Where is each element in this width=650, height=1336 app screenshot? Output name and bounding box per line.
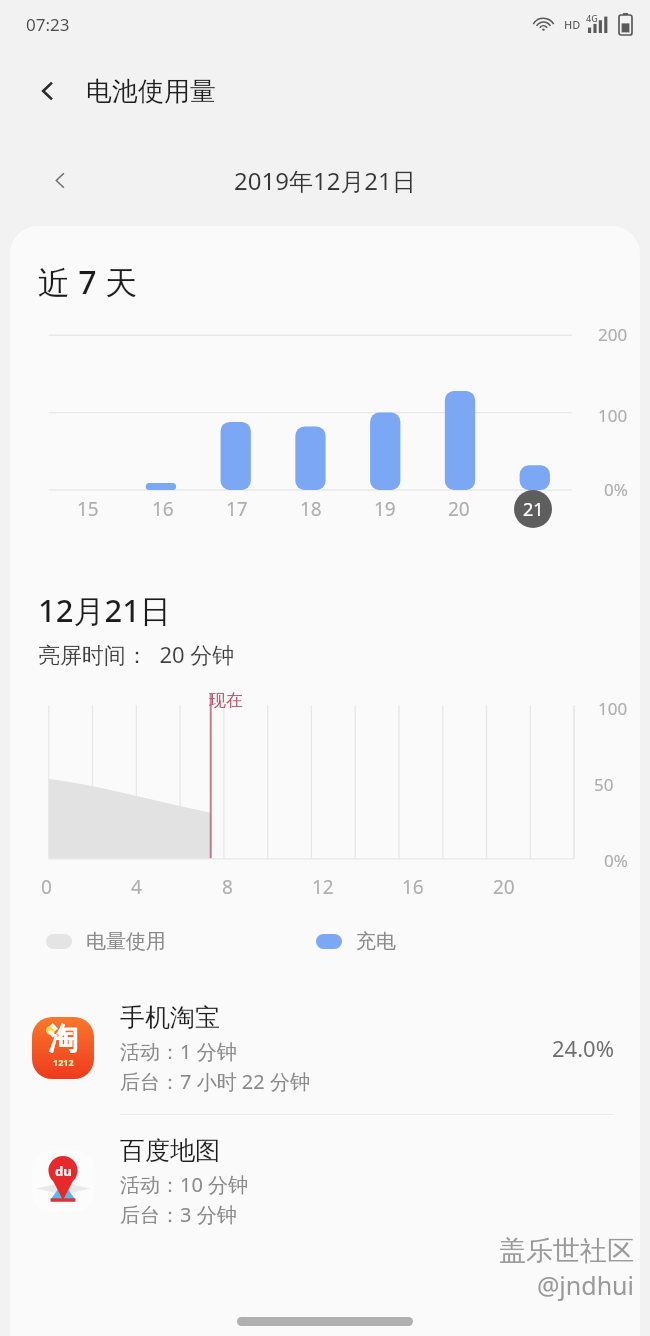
staticText: 充电 bbox=[356, 929, 396, 954]
staticText: 19 bbox=[374, 496, 396, 522]
button[interactable]: du bbox=[10, 1115, 640, 1247]
staticText: 手机淘宝 bbox=[120, 1002, 220, 1033]
staticText: 后台：7 小时 22 分钟 bbox=[120, 1068, 310, 1095]
staticText: 现在 bbox=[209, 690, 243, 711]
staticText: 20 bbox=[493, 874, 515, 900]
staticText: 电池使用量 bbox=[86, 75, 216, 108]
staticText: 8 bbox=[222, 874, 233, 900]
staticText: 21 bbox=[523, 497, 544, 522]
staticText: 16 bbox=[152, 496, 174, 522]
button[interactable]: 淘 bbox=[10, 982, 640, 1115]
staticText: 4G bbox=[586, 12, 598, 24]
staticText: 200 bbox=[598, 323, 628, 346]
staticText: 活动：1 分钟 bbox=[120, 1038, 237, 1065]
staticText: 盖乐世社区 bbox=[499, 1234, 634, 1268]
staticText: 百度地图 bbox=[120, 1135, 220, 1166]
staticText: 0% bbox=[604, 849, 628, 872]
button[interactable]: 返回 bbox=[28, 71, 68, 111]
button[interactable]: 15 bbox=[50, 487, 125, 531]
button[interactable]: 前一天 bbox=[40, 160, 80, 200]
button[interactable]: 18 bbox=[274, 487, 348, 531]
staticText: 近 7 天 bbox=[38, 260, 137, 304]
staticText: 1212 bbox=[53, 1056, 74, 1068]
staticText: 16 bbox=[402, 874, 424, 900]
button[interactable]: 19 bbox=[348, 487, 422, 531]
button[interactable]: 20 bbox=[422, 487, 496, 531]
staticText: 4 bbox=[131, 874, 142, 900]
staticText: 2019年12月21日 bbox=[234, 164, 416, 197]
staticText: 后台：3 分钟 bbox=[120, 1201, 237, 1228]
staticText: 18 bbox=[300, 496, 322, 522]
staticText: 12月21日 bbox=[38, 589, 171, 631]
staticText: 20 bbox=[448, 496, 470, 522]
staticText: 24.0% bbox=[552, 1033, 614, 1063]
button[interactable]: 17 bbox=[200, 487, 274, 531]
staticText: 0 bbox=[41, 874, 52, 900]
staticText: 15 bbox=[77, 496, 99, 522]
staticText: 12 bbox=[312, 874, 334, 900]
staticText: 100 bbox=[598, 697, 628, 720]
staticText: 07:23 bbox=[26, 13, 70, 36]
button[interactable]: 21 bbox=[496, 487, 570, 531]
staticText: 17 bbox=[226, 496, 248, 522]
staticText: 100 bbox=[598, 404, 628, 427]
staticText: 50 bbox=[594, 773, 614, 796]
staticText: 0% bbox=[604, 478, 628, 501]
button[interactable]: 16 bbox=[125, 487, 200, 531]
staticText: 亮屏时间： 20 分钟 bbox=[38, 639, 235, 669]
staticText: du bbox=[55, 1162, 72, 1180]
staticText: 淘 bbox=[48, 1020, 78, 1058]
staticText: 电量使用 bbox=[86, 929, 166, 954]
staticText: 活动：10 分钟 bbox=[120, 1171, 249, 1198]
staticText: @jndhui bbox=[536, 1268, 634, 1302]
staticText: HD bbox=[564, 17, 581, 32]
